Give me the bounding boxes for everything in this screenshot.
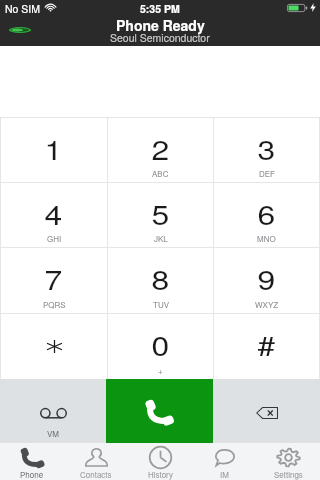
staticText: DEF — [259, 168, 275, 179]
button[interactable]: History — [128, 443, 192, 480]
button[interactable]: Phone — [0, 443, 64, 480]
staticText: 4 — [45, 194, 63, 233]
staticText: 6 — [258, 194, 276, 233]
staticText: IM — [220, 469, 229, 480]
staticText: 5:35 PM — [140, 1, 180, 16]
staticText: WXYZ — [255, 299, 279, 310]
button[interactable]: 1 — [1, 118, 107, 182]
button[interactable]: star — [1, 314, 107, 379]
staticText: JKL — [154, 233, 168, 244]
staticText: 1 — [45, 129, 63, 168]
button[interactable]: IM — [192, 443, 256, 480]
button[interactable]: 6 — [214, 183, 319, 247]
button[interactable]: Call — [106, 379, 213, 443]
button[interactable]: 7 — [1, 248, 107, 313]
staticText: Phone — [20, 469, 44, 480]
button[interactable]: Delete — [213, 379, 320, 443]
staticText: ABC — [152, 168, 169, 179]
button[interactable]: Contacts — [64, 443, 128, 480]
staticText: Phone Ready — [116, 15, 205, 35]
button[interactable]: 3 — [214, 118, 319, 182]
button[interactable]: 9 — [214, 248, 319, 313]
button[interactable]: 4 — [1, 183, 107, 247]
staticText: PQRS — [43, 299, 66, 310]
staticText: 3 — [258, 129, 276, 168]
button[interactable]: # — [214, 314, 319, 379]
staticText: No SIM — [5, 1, 41, 16]
staticText: 2 — [152, 129, 170, 168]
staticText: + — [158, 365, 163, 376]
button[interactable]: VM — [0, 379, 106, 443]
staticText: History — [148, 469, 173, 480]
staticText: TUV — [153, 299, 169, 310]
staticText: Seoul Semiconductor — [110, 30, 210, 45]
button[interactable]: 0 — [108, 314, 213, 379]
staticText: 7 — [45, 259, 63, 298]
staticText: 8 — [152, 259, 170, 298]
button[interactable]: Settings — [256, 443, 320, 480]
staticText: GHI — [47, 233, 62, 244]
button[interactable]: 8 — [108, 248, 213, 313]
staticText: 0 — [152, 325, 170, 364]
staticText: 9 — [258, 259, 276, 298]
staticText: # — [258, 325, 276, 364]
staticText: MNO — [257, 233, 276, 244]
staticText: 5 — [152, 194, 170, 233]
staticText: VM — [47, 428, 59, 439]
staticText: Settings — [274, 469, 303, 480]
button[interactable]: 2 — [108, 118, 213, 182]
other: star — [47, 340, 62, 353]
button[interactable]: 5 — [108, 183, 213, 247]
staticText: Contacts — [80, 469, 112, 480]
